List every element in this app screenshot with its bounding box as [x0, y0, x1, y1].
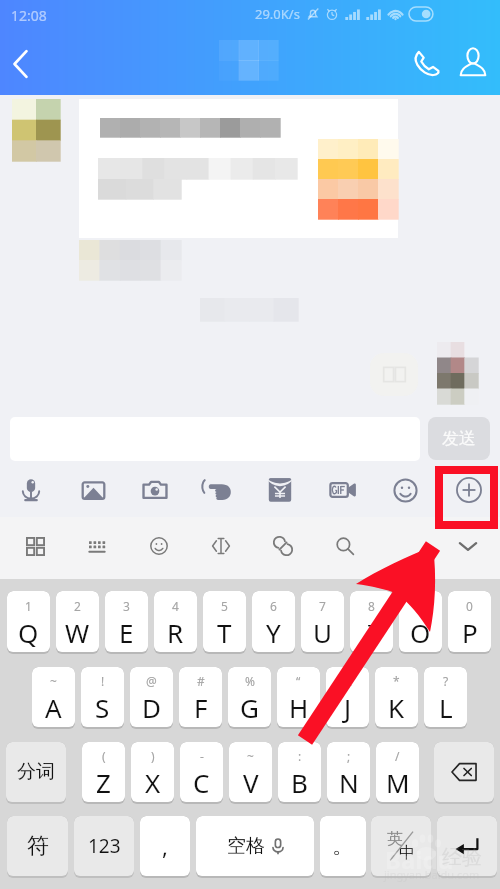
button[interactable]: Hide keyboard — [446, 517, 490, 579]
button[interactable]: * — [375, 667, 418, 727]
staticText: jingyan.baidu.com — [384, 867, 480, 882]
button[interactable]: Edit cursor — [199, 517, 243, 579]
staticText: “ — [296, 673, 301, 689]
staticText: * — [393, 673, 400, 689]
button[interactable]: 英 — [371, 816, 431, 876]
button[interactable]: Call — [403, 37, 451, 88]
staticText: 发送 — [442, 428, 476, 449]
staticText: P — [462, 615, 478, 650]
button[interactable]: 6 — [252, 591, 295, 652]
staticText: K — [388, 690, 405, 725]
button[interactable]: Emoji — [374, 463, 437, 517]
staticText: ! — [101, 673, 105, 689]
button[interactable]: @ — [130, 667, 173, 727]
button[interactable]: & — [326, 667, 369, 727]
button[interactable]: 2 — [56, 591, 99, 652]
staticText: 0 — [466, 598, 473, 614]
staticText: X — [145, 765, 161, 800]
staticText: 3 — [123, 598, 130, 614]
button[interactable]: / — [376, 742, 419, 802]
button[interactable]: ! — [81, 667, 124, 727]
staticText: / — [395, 748, 400, 764]
staticText: @ — [146, 673, 157, 689]
staticText: 分词 — [17, 760, 55, 784]
button[interactable]: Emoji — [137, 517, 181, 579]
button[interactable]: Send GIF — [311, 463, 374, 517]
button[interactable]: , — [140, 816, 190, 876]
button[interactable]: More options — [437, 463, 500, 517]
staticText: 5 — [221, 598, 228, 614]
button[interactable]: ~ — [229, 742, 272, 802]
button[interactable]: % — [228, 667, 271, 727]
staticText: I — [367, 615, 376, 650]
staticText: ~ — [247, 748, 254, 764]
staticText: Q — [18, 615, 39, 650]
staticText: Z — [96, 765, 111, 800]
button[interactable]: 0 — [448, 591, 491, 652]
button[interactable]: 7 — [301, 591, 344, 652]
staticText: : — [298, 748, 302, 764]
staticText: H — [289, 690, 309, 725]
staticText: B — [291, 765, 308, 800]
staticText: 符 — [27, 832, 49, 860]
button[interactable]: 分词 — [6, 742, 66, 802]
button[interactable]: 符 — [7, 816, 68, 876]
staticText: M — [386, 765, 410, 800]
button[interactable] — [437, 816, 497, 876]
button[interactable]: 。 — [320, 816, 366, 876]
staticText: J — [344, 690, 352, 725]
button[interactable]: 5 — [203, 591, 246, 652]
staticText: 经验 — [442, 845, 482, 870]
staticText: O — [410, 615, 431, 650]
staticText: ? — [443, 673, 449, 689]
staticText: V — [243, 765, 259, 800]
button[interactable]: ? — [424, 667, 467, 727]
button[interactable]: 1 — [7, 591, 50, 652]
button[interactable]: Voice message — [0, 463, 62, 517]
button[interactable]: Back — [0, 37, 40, 90]
button[interactable]: 9 — [399, 591, 442, 652]
staticText: ; — [347, 748, 351, 764]
button[interactable]: Attachment — [261, 517, 305, 579]
button[interactable]: 8 — [350, 591, 393, 652]
staticText: # — [197, 673, 205, 689]
button[interactable]: ) — [131, 742, 174, 802]
staticText: 1 — [25, 598, 32, 614]
button[interactable]: Apps — [13, 517, 57, 579]
button[interactable]: Red packet — [248, 463, 311, 517]
staticText: D — [142, 690, 161, 725]
staticText: U — [313, 615, 333, 650]
button[interactable]: Profile — [449, 36, 497, 87]
button[interactable]: 3 — [105, 591, 148, 652]
button[interactable]: 空格 — [196, 816, 314, 876]
staticText: 英 — [387, 829, 403, 849]
staticText: ) — [151, 748, 155, 764]
staticText: 123 — [88, 833, 121, 859]
button[interactable]: Poke — [186, 463, 248, 517]
staticText: 中 — [399, 843, 415, 863]
staticText: ~ — [50, 673, 57, 689]
button[interactable]: Camera — [124, 463, 186, 517]
button[interactable]: Search — [323, 517, 367, 579]
button[interactable]: : — [278, 742, 321, 802]
staticText: T — [217, 615, 232, 650]
staticText: W — [65, 615, 90, 650]
staticText: 12:08 — [11, 6, 47, 25]
button[interactable]: 发送 — [428, 417, 490, 460]
button[interactable]: “ — [277, 667, 320, 727]
button[interactable]: Photo — [62, 463, 124, 517]
button[interactable]: 4 — [154, 591, 197, 652]
button[interactable] — [434, 742, 494, 802]
button[interactable]: 123 — [74, 816, 134, 876]
button[interactable]: ( — [82, 742, 125, 802]
button[interactable]: # — [179, 667, 222, 727]
button[interactable]: ; — [327, 742, 370, 802]
button[interactable]: Keyboard — [75, 517, 119, 579]
button[interactable]: - — [180, 742, 223, 802]
staticText: & — [343, 673, 352, 689]
staticText: C — [193, 765, 210, 800]
button[interactable]: ~ — [32, 667, 75, 727]
staticText: - — [200, 748, 204, 764]
